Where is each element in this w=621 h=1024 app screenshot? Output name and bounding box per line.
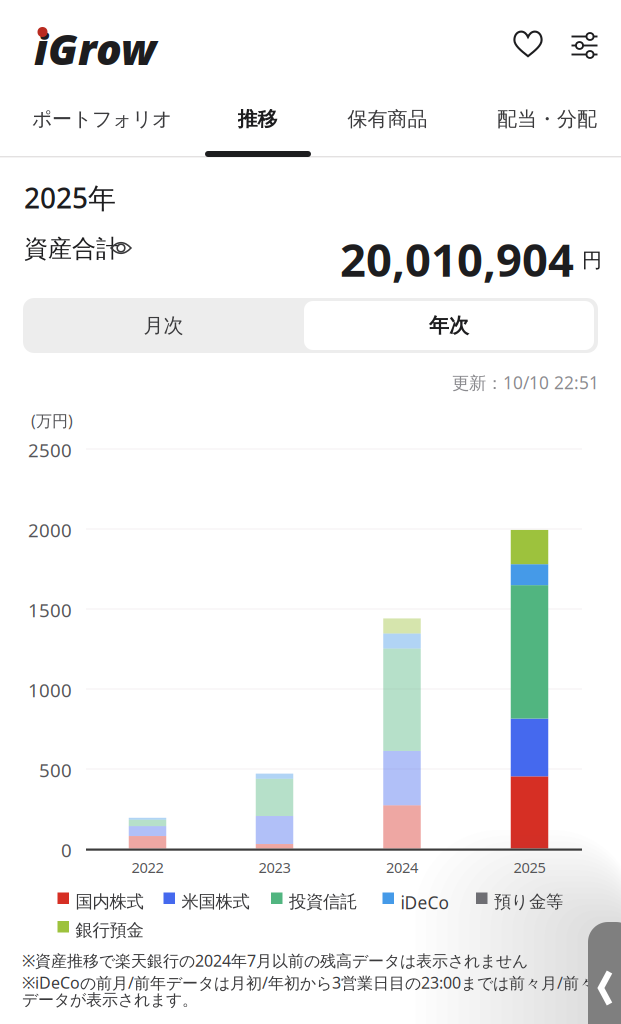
staticText: 20,010,904 xyxy=(340,229,574,289)
staticText: 2500 xyxy=(28,437,72,462)
button[interactable]: 保有商品 xyxy=(312,99,462,139)
staticText: ※iDeCoの前月/前年データは月初/年初から3営業日目の23:00までは前々月… xyxy=(22,972,621,993)
staticText: iDeCo xyxy=(400,891,448,914)
button[interactable]: ポートフォリオ xyxy=(27,99,177,139)
staticText: 更新：10/10 22:51 xyxy=(452,371,599,394)
staticText: 保有商品 xyxy=(347,107,427,131)
staticText: 配当・分配 xyxy=(497,107,597,131)
staticText: 2023 xyxy=(258,857,290,877)
button[interactable]: 推移 xyxy=(182,99,332,139)
staticText: 2000 xyxy=(28,517,72,542)
staticText: iGrow xyxy=(34,20,156,77)
staticText: 月次 xyxy=(143,313,183,338)
button[interactable]: 月次 xyxy=(23,298,304,353)
staticText: 資産合計 xyxy=(24,234,120,263)
button[interactable]: 設定 xyxy=(571,32,598,59)
staticText: 国内株式 xyxy=(75,891,143,912)
staticText: 2024 xyxy=(386,857,418,877)
staticText: 2025 xyxy=(513,857,545,877)
staticText: ポートフォリオ xyxy=(32,107,172,131)
staticText: 1500 xyxy=(28,597,72,622)
staticText: 円 xyxy=(582,248,602,273)
button[interactable]: 年次 xyxy=(304,301,594,350)
button[interactable]: 配当・分配 xyxy=(472,99,621,139)
staticText: 銀行預金 xyxy=(75,919,143,941)
staticText: 預り金等 xyxy=(494,891,563,912)
staticText: 500 xyxy=(39,757,72,782)
staticText: 年次 xyxy=(429,313,469,338)
staticText: 2025年 xyxy=(24,179,116,216)
staticText: 米国株式 xyxy=(181,891,249,912)
staticText: (万円) xyxy=(31,410,73,431)
button[interactable]: 金額の表示切替 xyxy=(110,239,132,257)
button[interactable]: お気に入り xyxy=(513,29,543,59)
staticText: ※資産推移で楽天銀行の2024年7月以前の残高データは表示されません xyxy=(22,950,528,971)
button[interactable]: 閉じる xyxy=(588,922,621,1024)
staticText: 1000 xyxy=(28,677,72,702)
staticText: 投資信託 xyxy=(289,891,357,912)
staticText: 推移 xyxy=(237,107,277,131)
staticText: 0 xyxy=(61,837,72,862)
staticText: 2022 xyxy=(131,857,163,877)
staticText: データが表示されます。 xyxy=(22,990,198,1010)
